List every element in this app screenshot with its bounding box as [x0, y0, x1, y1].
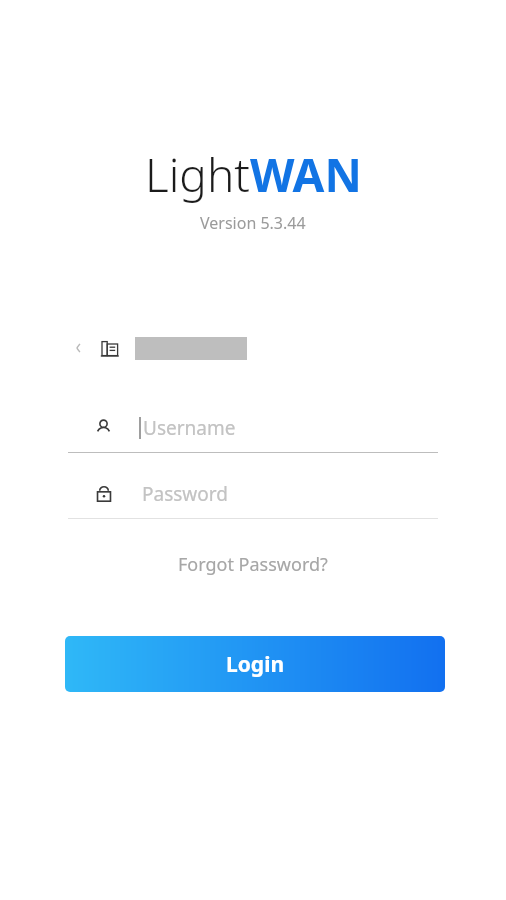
staticText: Password	[142, 481, 228, 507]
staticText: LightWAN	[145, 143, 362, 206]
button[interactable]: Forgot Password?	[168, 546, 338, 583]
staticText: Login	[226, 650, 285, 679]
button[interactable]: Login	[65, 636, 445, 692]
staticText: Username	[143, 415, 236, 441]
staticText: Forgot Password?	[178, 552, 328, 577]
button[interactable]: Password	[68, 468, 438, 519]
button[interactable]: Select company	[64, 330, 264, 366]
button[interactable]: Username	[68, 402, 438, 453]
staticText: Version 5.3.44	[200, 212, 306, 234]
